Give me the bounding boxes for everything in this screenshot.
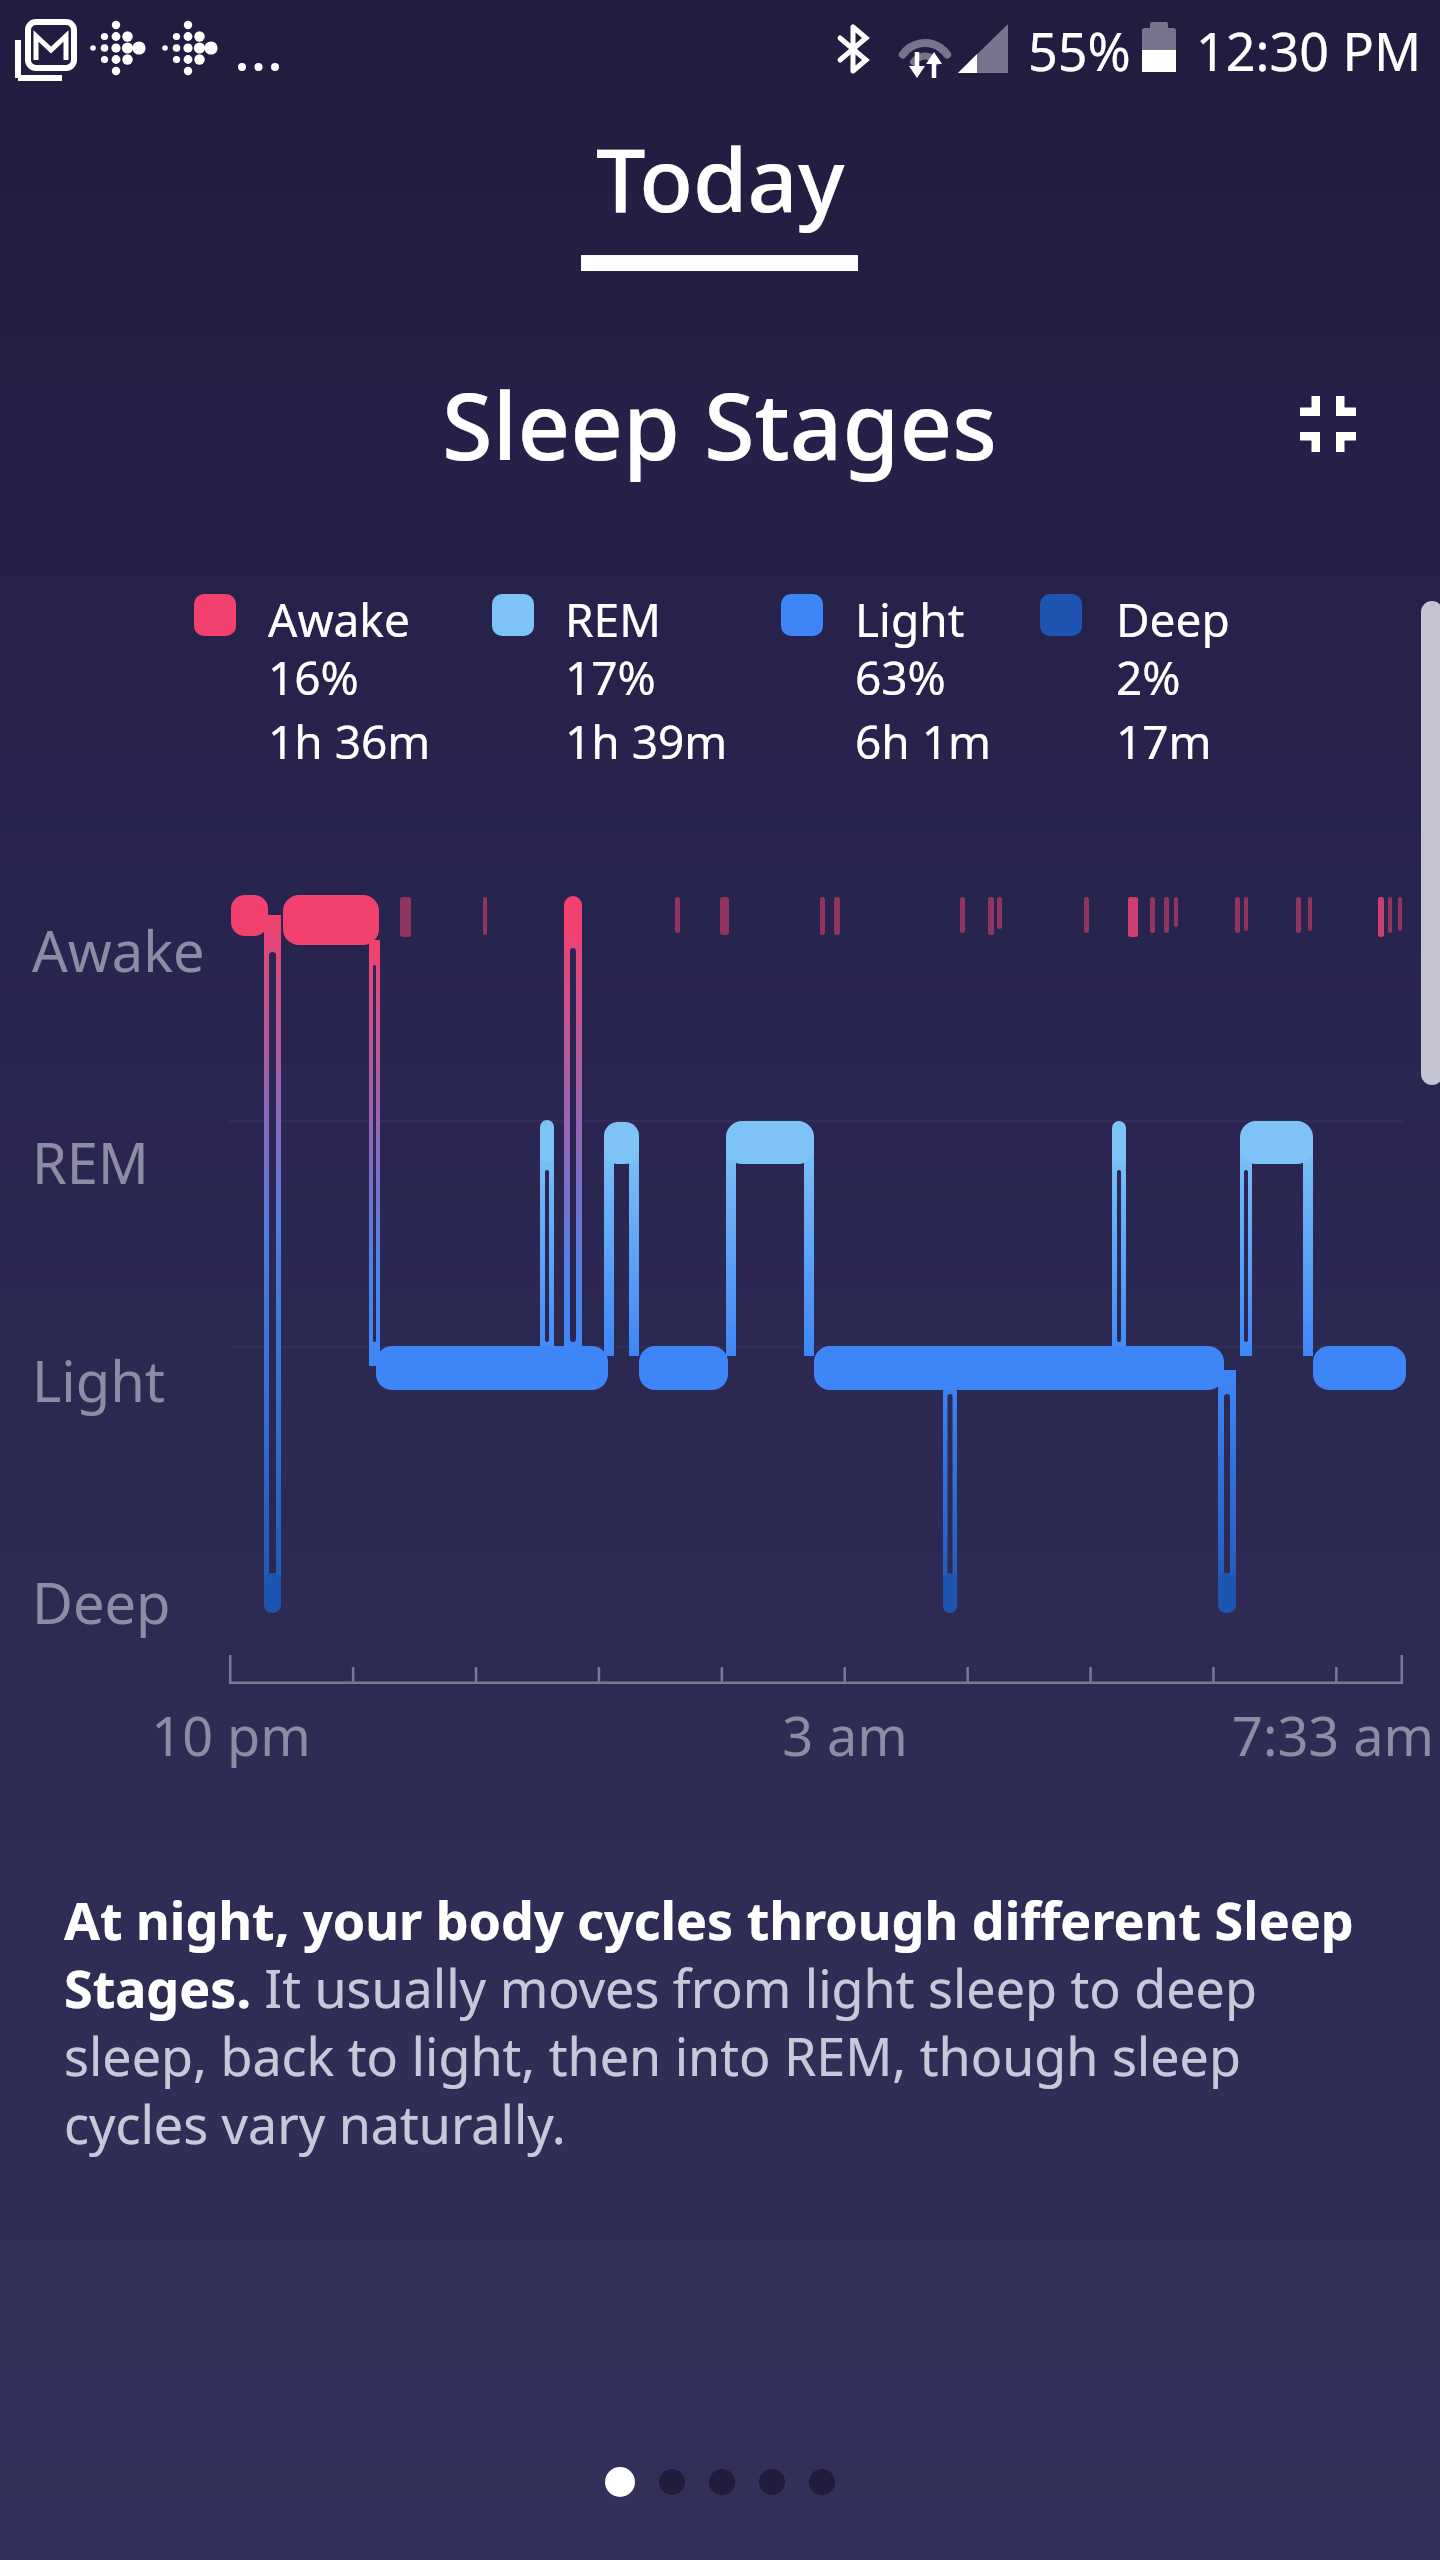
staticText: Today: [596, 118, 845, 238]
staticText: Awake: [32, 912, 205, 988]
staticText: 63%: [855, 646, 946, 709]
staticText: 12:30 PM: [1196, 15, 1422, 86]
staticText: 7:33 am: [1232, 1698, 1434, 1768]
staticText: 1h 36m: [268, 710, 431, 773]
staticText: 55%: [1028, 15, 1131, 86]
staticText: 3 am: [782, 1698, 908, 1768]
button[interactable]: [1300, 396, 1356, 452]
staticText: cycles vary naturally.: [64, 2088, 566, 2159]
staticText: 1h 39m: [565, 710, 728, 773]
staticText: Stages. It usually moves from light slee…: [64, 1952, 1257, 2023]
staticText: 17m: [1116, 710, 1212, 773]
staticText: REM: [32, 1124, 149, 1200]
staticText: Deep: [32, 1564, 171, 1640]
staticText: Awake: [268, 588, 410, 651]
staticText: Light: [855, 588, 965, 651]
button[interactable]: Today: [596, 118, 845, 238]
staticText: REM: [565, 588, 661, 651]
staticText: 16%: [268, 646, 359, 709]
staticText: Deep: [1116, 588, 1230, 651]
button[interactable]: [659, 2469, 685, 2495]
staticText: sleep, back to light, then into REM, tho…: [64, 2020, 1241, 2091]
button[interactable]: [759, 2469, 785, 2495]
staticText: Sleep Stages: [442, 362, 998, 487]
button[interactable]: [605, 2467, 635, 2497]
staticText: 17%: [565, 646, 656, 709]
staticText: 2%: [1116, 646, 1181, 709]
button[interactable]: [809, 2469, 835, 2495]
staticText: 10 pm: [151, 1698, 311, 1768]
staticText: Light: [32, 1342, 166, 1418]
button[interactable]: [709, 2469, 735, 2495]
staticText: 6h 1m: [855, 710, 992, 773]
staticText: At night, your body cycles through diffe…: [64, 1884, 1354, 1955]
